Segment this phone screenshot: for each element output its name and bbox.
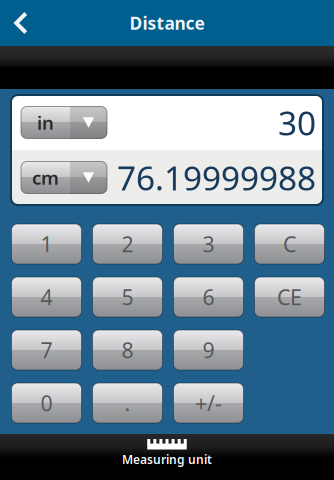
- staticText: 0: [40, 389, 52, 417]
- button[interactable]: 0: [11, 383, 81, 423]
- button[interactable]: CE: [254, 277, 324, 317]
- button[interactable]: 8: [92, 330, 162, 370]
- button[interactable]: Measuring unit: [0, 434, 334, 480]
- button[interactable]: cm: [21, 161, 107, 193]
- staticText: 76.19999988: [117, 155, 316, 200]
- staticText: Measuring unit: [122, 451, 212, 467]
- staticText: C: [283, 230, 296, 258]
- button[interactable]: 5: [92, 277, 162, 317]
- staticText: in: [37, 110, 54, 135]
- button[interactable]: in: [21, 106, 107, 138]
- staticText: 3: [202, 230, 214, 258]
- button[interactable]: 9: [173, 330, 243, 370]
- staticText: 2: [121, 230, 133, 258]
- staticText: 30: [278, 100, 316, 145]
- staticText: 4: [40, 283, 52, 311]
- staticText: 9: [202, 336, 214, 364]
- button[interactable]: C: [254, 224, 324, 264]
- staticText: 6: [202, 283, 214, 311]
- staticText: 5: [121, 283, 133, 311]
- staticText: .: [124, 389, 130, 417]
- staticText: 1: [40, 230, 52, 258]
- button[interactable]: .: [92, 383, 162, 423]
- button[interactable]: 4: [11, 277, 81, 317]
- staticText: 7: [40, 336, 52, 364]
- button[interactable]: 3: [173, 224, 243, 264]
- staticText: cm: [32, 165, 59, 190]
- button[interactable]: +/-: [173, 383, 243, 423]
- button[interactable]: Back: [0, 0, 42, 46]
- button[interactable]: 7: [11, 330, 81, 370]
- staticText: Distance: [129, 11, 204, 34]
- button[interactable]: 1: [11, 224, 81, 264]
- staticText: 8: [121, 336, 133, 364]
- staticText: CE: [277, 283, 302, 311]
- button[interactable]: 6: [173, 277, 243, 317]
- staticText: +/-: [195, 389, 222, 417]
- button[interactable]: 2: [92, 224, 162, 264]
